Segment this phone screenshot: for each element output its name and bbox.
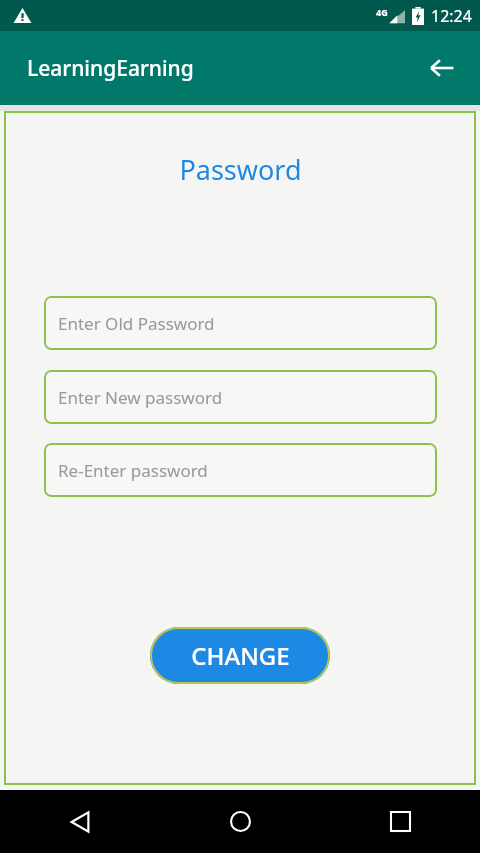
button[interactable]: Back [0,790,160,853]
button[interactable]: Re-Enter password [44,443,437,497]
staticText: Enter New password [58,386,223,409]
staticText: Re-Enter password [58,459,208,482]
button[interactable]: Back [418,44,466,92]
button[interactable]: CHANGE [150,627,330,684]
staticText: 4G [376,6,388,18]
staticText: Enter Old Password [58,312,215,335]
staticText: 12:24 [431,5,472,27]
staticText: Password [179,151,302,188]
staticText: LearningEarning [27,54,194,83]
button[interactable]: Enter Old Password [44,296,437,350]
button[interactable]: Recent apps [320,790,480,853]
button[interactable]: Enter New password [44,370,437,424]
button[interactable]: Home [160,790,320,853]
staticText: CHANGE [191,639,290,672]
